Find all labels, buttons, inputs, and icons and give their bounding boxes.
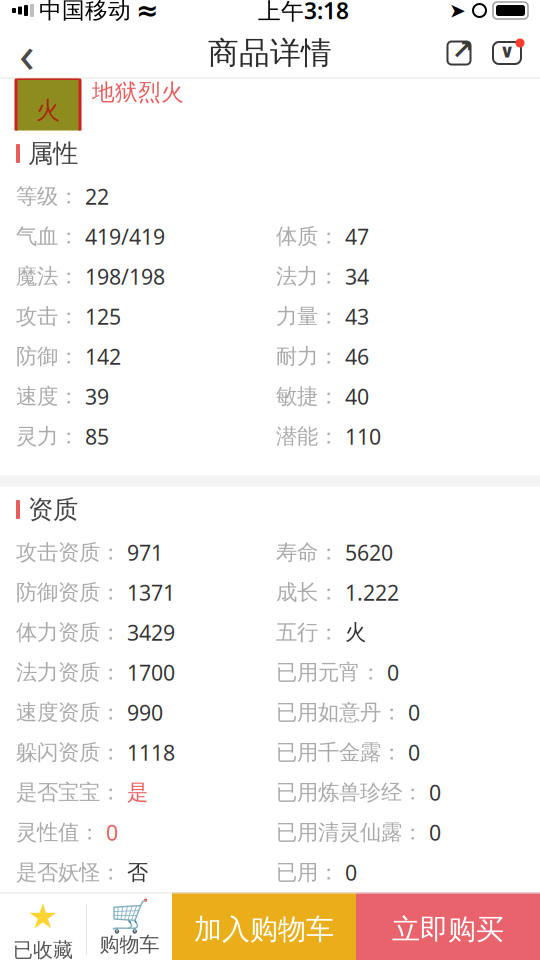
staticText: 0 <box>106 818 118 847</box>
staticText: 已用元宵： <box>276 659 381 686</box>
staticText: 3429 <box>127 618 175 647</box>
staticText: 已收藏 <box>13 938 73 960</box>
staticText: 已用清灵仙露： <box>276 819 423 846</box>
staticText: 防御资质： <box>16 579 121 606</box>
staticText: ∨ <box>499 40 514 62</box>
staticText: 灵力： <box>16 423 79 450</box>
staticText: 成长： <box>276 579 339 606</box>
staticText: ≈ <box>136 0 158 26</box>
staticText: 110 <box>345 422 381 451</box>
staticText: 属性 <box>28 138 78 169</box>
staticText: 火 <box>36 96 60 125</box>
staticText: 已用： <box>276 859 339 886</box>
staticText: 34 <box>345 262 369 291</box>
button[interactable]: 立即购买 <box>356 892 540 960</box>
staticText: 资质 <box>28 494 78 525</box>
staticText: 是 <box>127 779 148 806</box>
staticText: 否 <box>127 859 148 886</box>
staticText: 43 <box>345 302 369 331</box>
staticText: 气血： <box>16 223 79 250</box>
staticText: 已用炼兽珍经： <box>276 779 423 806</box>
staticText: 速度资质： <box>16 699 121 726</box>
staticText: 耐力： <box>276 343 339 370</box>
staticText: 0 <box>387 658 399 687</box>
button[interactable]: 加入购物车 <box>172 892 356 960</box>
staticText: 上午3:18 <box>258 0 349 25</box>
staticText: 198/198 <box>85 262 165 291</box>
staticText: 加入购物车 <box>194 912 334 947</box>
staticText: 22 <box>85 182 109 211</box>
staticText: 5620 <box>345 538 393 567</box>
staticText: 立即购买 <box>392 912 504 947</box>
staticText: ‹ <box>19 19 35 87</box>
staticText: 五行： <box>276 619 339 646</box>
staticText: 1.222 <box>345 578 399 607</box>
staticText: 力量： <box>276 303 339 330</box>
staticText: 已用千金露： <box>276 739 402 766</box>
staticText: 47 <box>345 222 369 251</box>
staticText: 躲闪资质： <box>16 739 121 766</box>
staticText: 40 <box>345 382 369 411</box>
staticText: ★ <box>27 896 58 936</box>
staticText: 是否宝宝： <box>16 779 121 806</box>
staticText: 防御： <box>16 343 79 370</box>
staticText: 419/419 <box>85 222 165 251</box>
staticText: 地狱烈火 <box>92 78 184 106</box>
staticText: 商品详情 <box>208 34 332 72</box>
staticText: 灵性值： <box>16 819 100 846</box>
staticText: 971 <box>127 538 163 567</box>
staticText: 中国移动 <box>39 0 131 24</box>
staticText: ➤ <box>449 0 466 22</box>
staticText: 142 <box>85 342 121 371</box>
button[interactable]: 🛒 <box>87 892 172 960</box>
staticText: 1700 <box>127 658 175 687</box>
staticText: 寿命： <box>276 539 339 566</box>
staticText: 990 <box>127 698 163 727</box>
staticText: 速度： <box>16 383 79 410</box>
staticText: 39 <box>85 382 109 411</box>
staticText: 是否妖怪： <box>16 859 121 886</box>
staticText: 1371 <box>127 578 175 607</box>
staticText: 敏捷： <box>276 383 339 410</box>
staticText: ↗ <box>451 35 473 65</box>
button[interactable]: 消息 <box>482 27 532 78</box>
staticText: 购物车 <box>99 932 159 957</box>
staticText: 0 <box>408 698 420 727</box>
staticText: 🛒 <box>109 898 149 934</box>
staticText: 法力资质： <box>16 659 121 686</box>
staticText: 攻击： <box>16 303 79 330</box>
staticText: 火 <box>345 619 366 646</box>
staticText: 0 <box>429 818 441 847</box>
button[interactable]: ★ <box>0 892 86 960</box>
button[interactable]: 返回 <box>0 27 54 78</box>
staticText: 体力资质： <box>16 619 121 646</box>
staticText: 法力： <box>276 263 339 290</box>
staticText: 体质： <box>276 223 339 250</box>
staticText: 125 <box>85 302 121 331</box>
staticText: 等级： <box>16 183 79 210</box>
staticText: 已用如意丹： <box>276 699 402 726</box>
staticText: 1118 <box>127 738 175 767</box>
staticText: 攻击资质： <box>16 539 121 566</box>
staticText: 85 <box>85 422 109 451</box>
staticText: 潜能： <box>276 423 339 450</box>
staticText: 魔法： <box>16 263 79 290</box>
staticText: 0 <box>429 778 441 807</box>
button[interactable]: 分享 <box>436 27 482 78</box>
staticText: 46 <box>345 342 369 371</box>
staticText: 0 <box>408 738 420 767</box>
staticText: 0 <box>345 858 357 887</box>
